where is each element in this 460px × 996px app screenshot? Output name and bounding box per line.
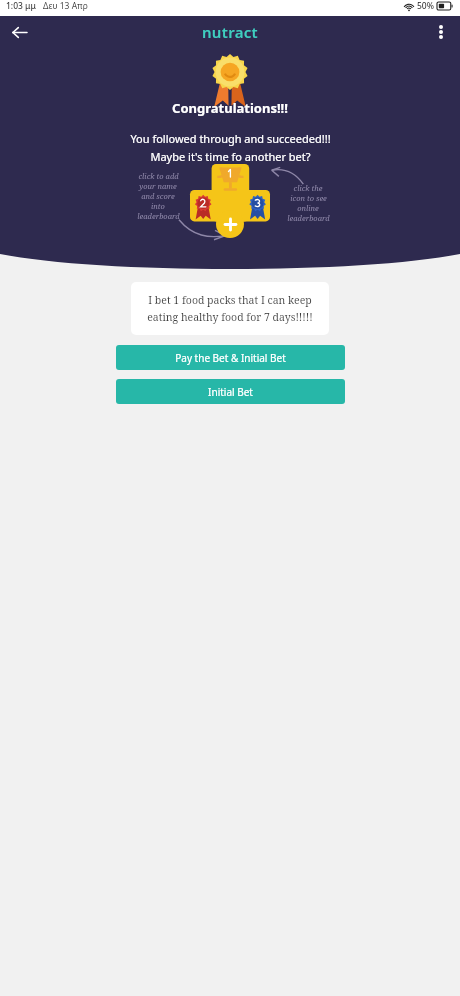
- button[interactable]: Back: [2, 16, 36, 48]
- staticText: click the: [293, 183, 323, 193]
- button[interactable]: Leaderboard: [190, 164, 270, 234]
- button[interactable]: Initial Bet: [116, 379, 345, 404]
- staticText: 1:03 μμ: [6, 0, 36, 12]
- staticText: 50%: [417, 0, 434, 12]
- staticText: Δευ 13 Απρ: [43, 0, 88, 12]
- staticText: Initial Bet: [208, 385, 253, 399]
- staticText: Maybe it's time fo another bet?: [150, 149, 311, 164]
- staticText: nutract: [202, 22, 258, 42]
- button[interactable]: Add score: [216, 210, 244, 238]
- button[interactable]: I bet 1 food packs that I can keep eatin…: [131, 282, 329, 335]
- staticText: icon to see: [290, 193, 327, 203]
- staticText: You followed through and succeeded!!!: [130, 131, 331, 146]
- staticText: into: [151, 201, 165, 211]
- staticText: and score: [141, 191, 175, 201]
- staticText: your name: [139, 181, 177, 191]
- staticText: Congratulations!!!: [172, 99, 288, 117]
- staticText: leaderboard: [137, 211, 180, 221]
- button[interactable]: Pay the Bet & Initial Bet: [116, 345, 345, 370]
- staticText: click to add: [138, 171, 179, 181]
- staticText: Pay the Bet & Initial Bet: [175, 351, 286, 365]
- staticText: I bet 1 food packs that I can keep eatin…: [140, 293, 320, 324]
- staticText: leaderboard: [287, 213, 330, 223]
- button[interactable]: More options: [425, 16, 457, 48]
- staticText: online: [297, 203, 319, 213]
